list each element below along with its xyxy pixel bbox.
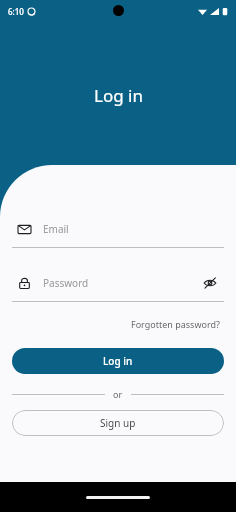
staticText: Email <box>43 222 69 236</box>
button[interactable]: Password <box>12 270 224 296</box>
staticText: or <box>113 388 123 400</box>
staticText: Log in <box>103 354 133 368</box>
staticText: 6:10 <box>8 6 24 17</box>
button[interactable]: Sign up <box>12 410 224 436</box>
staticText: Sign up <box>100 416 136 430</box>
button[interactable]: Log in <box>12 348 224 374</box>
staticText: Password <box>43 276 89 290</box>
button[interactable]: Email <box>12 216 224 242</box>
staticText: Forgotten password? <box>131 318 220 330</box>
staticText: Log in <box>94 84 143 107</box>
button[interactable]: Show password <box>200 273 220 293</box>
button[interactable]: Forgotten password? <box>127 316 224 332</box>
